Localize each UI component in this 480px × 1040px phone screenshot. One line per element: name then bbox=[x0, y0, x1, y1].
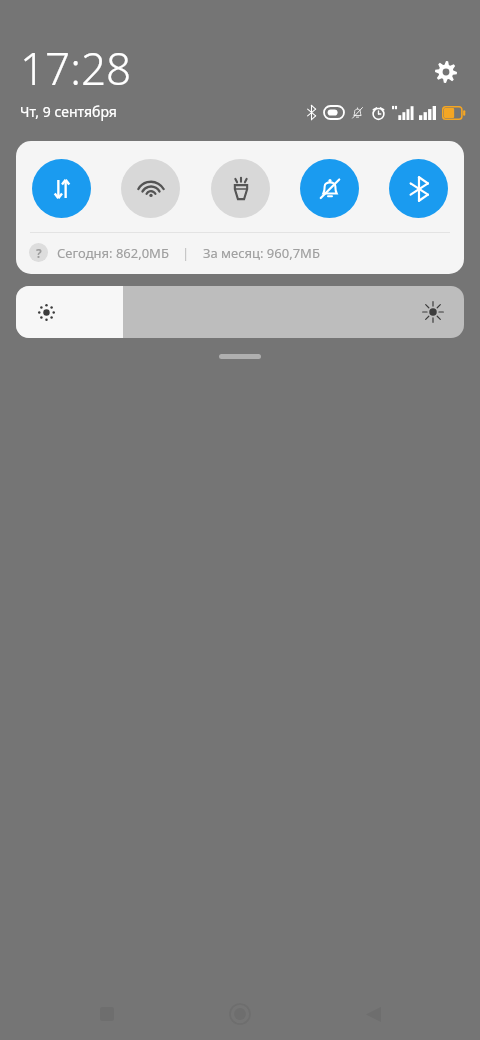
button[interactable]: Flashlight bbox=[211, 159, 270, 218]
button[interactable]: ? bbox=[16, 233, 464, 274]
button[interactable]: Bluetooth bbox=[389, 159, 448, 218]
button[interactable]: Brightness bbox=[16, 286, 464, 338]
staticText: | bbox=[182, 244, 190, 262]
staticText: Чт, 9 сентября bbox=[20, 102, 117, 121]
button[interactable]: Wi-Fi bbox=[121, 159, 180, 218]
staticText: 17:28 bbox=[20, 38, 132, 98]
button[interactable]: Settings bbox=[426, 52, 466, 92]
button[interactable]: Expand bbox=[219, 354, 261, 359]
staticText: ? bbox=[36, 245, 42, 261]
button[interactable]: Silent mode bbox=[300, 159, 359, 218]
staticText: Сегодня: 862,0МБ bbox=[57, 244, 169, 262]
staticText: За месяц: 960,7МБ bbox=[203, 244, 320, 262]
button[interactable]: Mobile data bbox=[32, 159, 91, 218]
